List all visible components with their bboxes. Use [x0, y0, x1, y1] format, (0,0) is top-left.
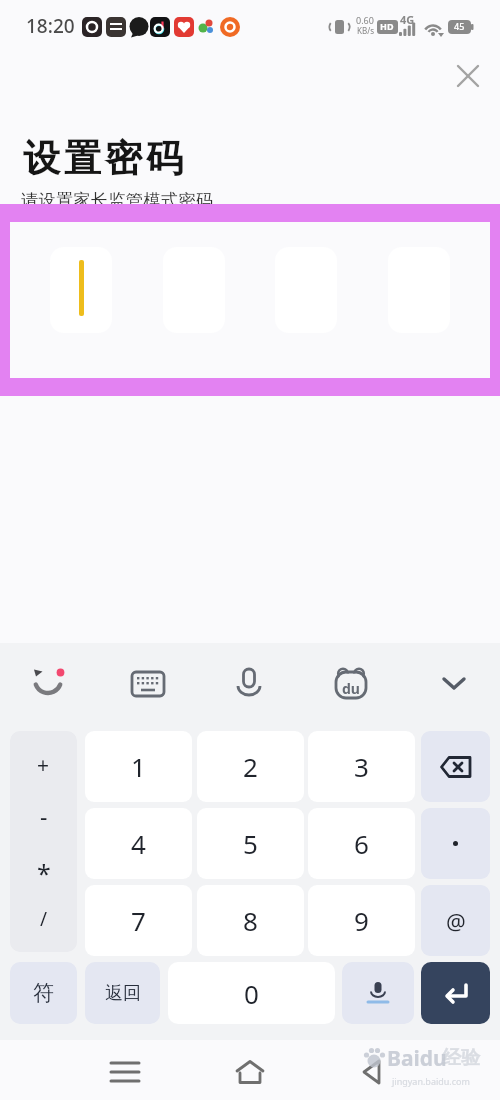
staticText: 4G [400, 12, 415, 26]
staticText: 1 [131, 749, 146, 784]
staticText: + [37, 751, 50, 780]
button[interactable] [101, 1048, 149, 1096]
staticText: jingyan.baidu.com [392, 1075, 470, 1087]
button[interactable]: 返回 [85, 962, 160, 1024]
staticText: @ [446, 906, 466, 936]
button[interactable] [448, 56, 488, 96]
button[interactable] [50, 247, 112, 333]
button[interactable]: 符 [10, 962, 77, 1024]
button[interactable] [421, 808, 490, 879]
button[interactable]: 8 [197, 885, 304, 956]
button[interactable] [225, 660, 273, 708]
button[interactable]: 6 [308, 808, 415, 879]
button[interactable]: 4 [85, 808, 192, 879]
staticText: 5 [243, 826, 258, 861]
staticText: 18:20 [26, 13, 75, 39]
button[interactable]: 5 [197, 808, 304, 879]
button[interactable]: @ [421, 885, 490, 956]
button[interactable]: + [10, 731, 77, 952]
staticText: HD [380, 20, 394, 32]
staticText: Baidu [387, 1044, 447, 1072]
button[interactable] [342, 962, 414, 1024]
button[interactable]: 2 [197, 731, 304, 802]
staticText: - [40, 800, 48, 831]
button[interactable]: 9 [308, 885, 415, 956]
button[interactable] [421, 731, 490, 802]
staticText: 4 [131, 826, 146, 861]
staticText: 7 [131, 903, 146, 938]
staticText: 3 [354, 749, 369, 784]
button[interactable] [24, 660, 72, 708]
staticText: 经验 [442, 1046, 480, 1070]
button[interactable]: 1 [85, 731, 192, 802]
button[interactable] [430, 660, 478, 708]
staticText: 6 [354, 826, 369, 861]
staticText: * [37, 856, 51, 890]
button[interactable]: du [327, 660, 375, 708]
button[interactable] [124, 660, 172, 708]
staticText: 符 [33, 980, 54, 1006]
staticText: 设置密码 [21, 135, 185, 182]
staticText: 返回 [105, 982, 141, 1005]
staticText: 请设置家长监管模式密码 [21, 190, 214, 211]
button[interactable]: 0 [168, 962, 335, 1024]
button[interactable] [421, 962, 490, 1024]
button[interactable] [226, 1048, 274, 1096]
staticText: 2 [243, 749, 258, 784]
button[interactable]: 3 [308, 731, 415, 802]
button[interactable] [348, 1048, 396, 1096]
staticText: du [342, 679, 360, 698]
staticText: 8 [243, 903, 258, 938]
staticText: / [40, 906, 48, 932]
staticText: 0.60 [356, 14, 374, 26]
staticText: 45 [454, 20, 465, 32]
staticText: KB/s [357, 25, 374, 36]
staticText: 9 [354, 903, 369, 938]
staticText: 0 [244, 976, 259, 1011]
button[interactable]: 7 [85, 885, 192, 956]
